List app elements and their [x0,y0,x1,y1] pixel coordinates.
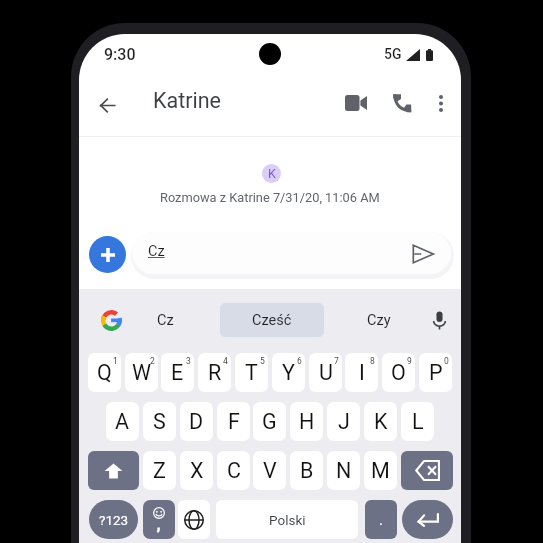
button[interactable]: I [345,353,378,392]
button[interactable]: P [419,353,452,392]
staticText: P [429,360,443,385]
staticText: Polski [269,512,306,528]
staticText: Cześć [252,312,292,329]
staticText: 5 [260,356,265,366]
button[interactable]: B [290,451,323,490]
button[interactable]: Y [272,353,305,392]
staticText: . [379,511,383,529]
staticText: G [262,409,277,434]
staticText: H [299,409,315,434]
button[interactable]: Change language [178,500,210,539]
button[interactable]: H [290,402,323,441]
button[interactable]: K [364,402,397,441]
button[interactable]: U [309,353,342,392]
button[interactable]: W [125,353,158,392]
button[interactable]: E [161,353,194,392]
staticText: O [391,360,406,385]
staticText: Czy [367,312,391,329]
button[interactable]: V [253,451,286,490]
button[interactable]: S [143,402,176,441]
button[interactable]: X [180,451,213,490]
button[interactable]: T [235,353,268,392]
button[interactable]: Cz [141,303,189,337]
staticText: Katrine [153,88,222,113]
button[interactable]: N [327,451,360,490]
staticText: V [263,458,277,483]
staticText: U [319,360,333,385]
button[interactable]: M [364,451,397,490]
button[interactable]: A [106,402,139,441]
button[interactable]: Cz [132,232,451,274]
staticText: I [359,360,365,385]
staticText: X [190,458,204,483]
button[interactable]: F [217,402,250,441]
button[interactable]: Z [143,451,176,490]
staticText: A [115,409,130,434]
button[interactable]: C [217,451,250,490]
staticText: 1 [113,356,118,366]
button[interactable]: ?123 [89,500,138,539]
button[interactable]: G [253,402,286,441]
staticText: Z [153,458,166,483]
staticText: S [153,409,166,434]
button[interactable]: Back [93,91,122,120]
staticText: M [371,458,390,483]
staticText: K [374,409,388,434]
staticText: D [189,409,204,434]
staticText: 9:30 [104,45,136,64]
staticText: L [412,409,424,434]
button[interactable]: Call [387,88,417,118]
staticText: Rozmowa z Katrine 7/31/20, 11:06 AM [160,190,380,205]
button[interactable]: More options [426,88,456,118]
staticText: F [228,409,240,434]
button[interactable]: Send [408,239,438,269]
staticText: K [268,166,276,181]
staticText: Q [97,360,112,385]
staticText: Y [282,360,295,385]
staticText: W [132,360,152,385]
button[interactable]: Polski [216,500,358,539]
staticText: ?123 [99,512,129,528]
staticText: , [157,517,161,533]
button[interactable]: Add attachment [89,236,126,273]
button[interactable]: L [401,402,434,441]
staticText: 3 [186,356,191,366]
button[interactable]: Emoji [143,500,175,539]
staticText: C [227,458,241,483]
staticText: Cz [157,312,174,329]
staticText: 6 [297,356,302,366]
staticText: 2 [150,356,155,366]
button[interactable]: R [198,353,231,392]
staticText: 8 [370,356,375,366]
button[interactable]: J [327,402,360,441]
staticText: 7 [334,356,339,366]
staticText: 4 [223,356,228,366]
button[interactable]: Backspace [401,451,453,490]
staticText: 9 [407,356,412,366]
staticText: B [300,458,314,483]
button[interactable]: Video call [341,88,371,118]
button[interactable]: Czy [354,303,403,337]
staticText: 5G [384,46,402,62]
staticText: R [208,360,222,385]
staticText: E [171,360,184,385]
button[interactable]: Shift [88,451,139,490]
staticText: T [245,360,258,385]
staticText: Cz [148,243,165,260]
staticText: N [336,458,352,483]
button[interactable]: . [365,500,397,539]
button[interactable]: Cześć [220,303,324,337]
button[interactable]: Voice input [426,307,453,334]
button[interactable]: Q [88,353,121,392]
button[interactable]: Enter [402,500,453,539]
staticText: J [338,409,350,434]
button[interactable]: D [180,402,213,441]
button[interactable]: O [382,353,415,392]
staticText: 0 [444,356,449,366]
